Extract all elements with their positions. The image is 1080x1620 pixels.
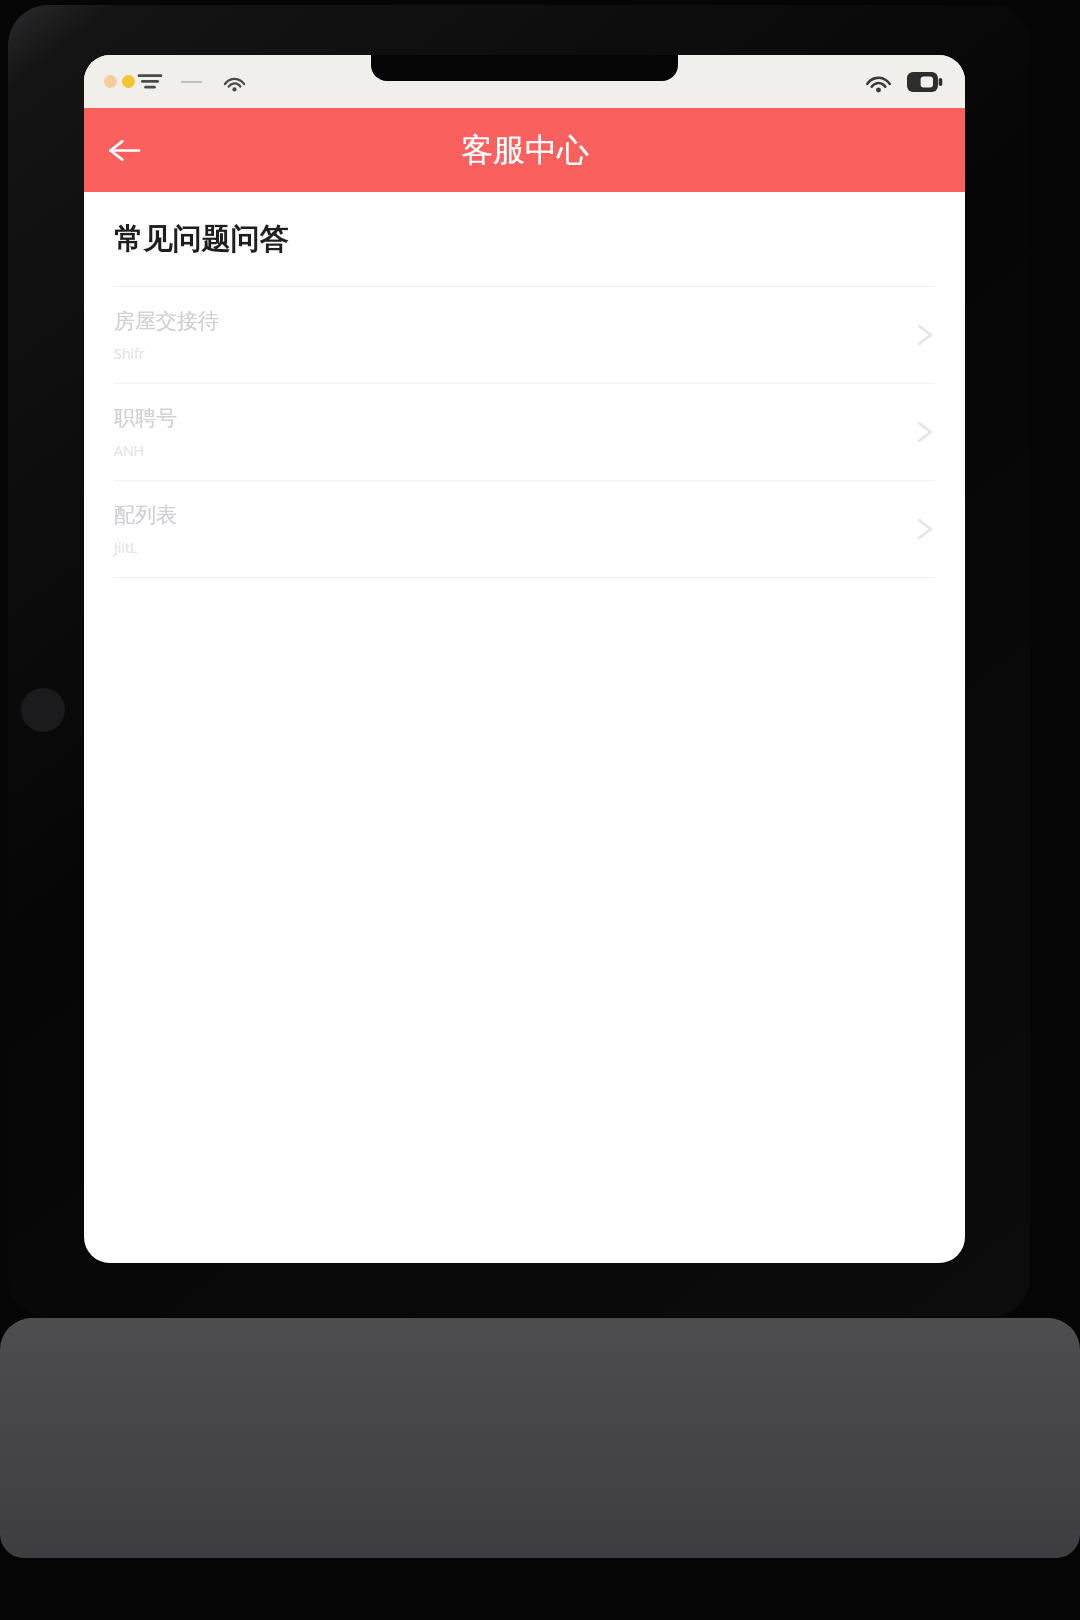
staticText: 职聘号 [114,405,177,431]
button[interactable]: 房屋交接待 [84,287,965,384]
button[interactable]: 配列表 [84,481,965,578]
staticText: ANH [114,441,144,460]
staticText: Shifr [114,344,145,363]
staticText: 房屋交接待 [114,308,219,334]
button[interactable]: Back [92,118,156,182]
staticText: 配列表 [114,502,177,528]
staticText: 常见问题问答 [114,221,288,258]
staticText: 客服中心 [461,130,589,170]
staticText: JiitL [114,538,138,557]
button[interactable]: 职聘号 [84,384,965,481]
